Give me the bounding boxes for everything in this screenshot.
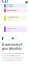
staticText: You have four events planned for	[2, 53, 25, 54]
staticText: A summary of	[2, 43, 22, 46]
button[interactable]: Morning standup	[4, 4, 27, 8]
staticText: Project sync	[7, 27, 17, 29]
staticText: Lunch with team	[7, 16, 19, 18]
staticText: sync in the late afternoon block.	[2, 59, 22, 61]
staticText: 9:41	[2, 0, 9, 4]
staticText: 12:00	[7, 18, 11, 20]
button[interactable]: Lunch with team	[4, 16, 27, 21]
staticText: your schedule	[2, 47, 22, 50]
button[interactable]: Design review	[4, 9, 27, 12]
button[interactable]: Project sync	[4, 26, 27, 32]
staticText: today, starting with the morning	[2, 55, 21, 57]
staticText: ▮▮	[25, 0, 27, 3]
staticText: standup and ending with a project	[2, 57, 24, 59]
staticText: Design review	[7, 10, 17, 11]
staticText: Morning standup	[7, 4, 14, 7]
staticText: 15:30	[7, 29, 11, 31]
